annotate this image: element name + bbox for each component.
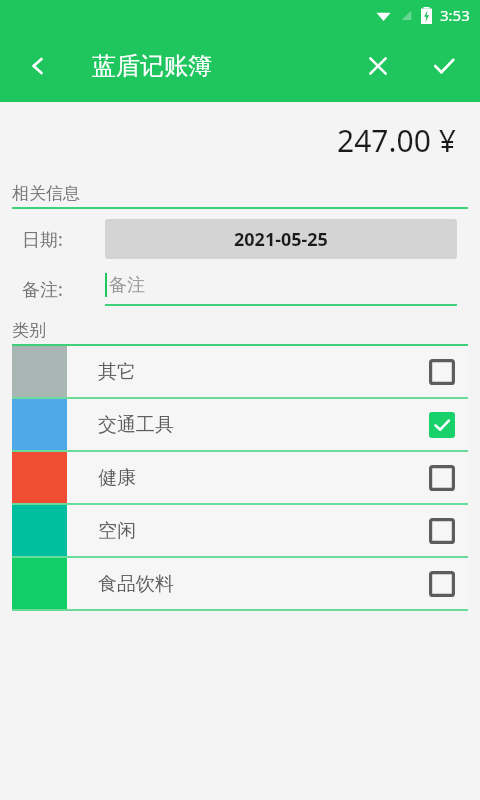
staticText: 备注: (22, 277, 63, 302)
staticText: 其它 (98, 360, 136, 384)
staticText: 蓝盾记账簿 (92, 51, 212, 81)
button[interactable]: 2021-05-25 (105, 219, 457, 259)
staticText: 3:53 (440, 5, 470, 25)
button[interactable]: 备注 (105, 273, 457, 306)
staticText: 交通工具 (98, 413, 174, 437)
staticText: 备注 (109, 274, 145, 297)
button[interactable]: Confirm (420, 42, 468, 90)
button[interactable]: 交通工具 (12, 399, 468, 450)
staticText: 食品饮料 (98, 572, 174, 596)
staticText: 空闲 (98, 519, 136, 543)
button[interactable]: 空闲 (12, 505, 468, 556)
button[interactable]: 健康 (12, 452, 468, 503)
staticText: 日期: (22, 227, 63, 252)
staticText: 类别 (12, 320, 46, 341)
staticText: 2021-05-25 (234, 227, 328, 252)
staticText: 健康 (98, 466, 136, 490)
staticText: 247.00 ¥ (337, 120, 456, 161)
button[interactable]: Cancel (354, 42, 402, 90)
button[interactable]: Back (14, 42, 62, 90)
staticText: 相关信息 (12, 183, 80, 204)
button[interactable]: 食品饮料 (12, 558, 468, 609)
button[interactable]: 其它 (12, 346, 468, 397)
